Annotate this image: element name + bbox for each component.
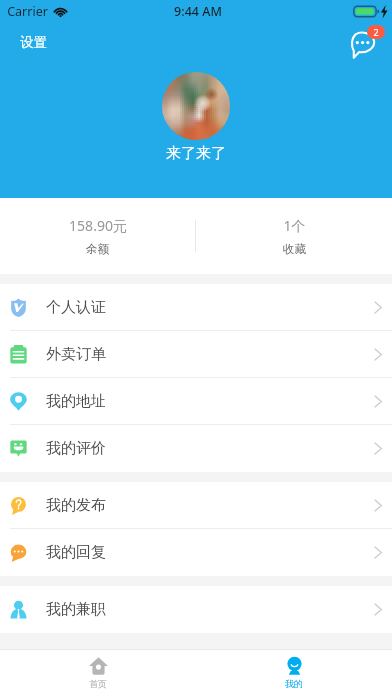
staticText: 来了来了 xyxy=(166,144,226,163)
staticText: 我的发布 xyxy=(46,496,106,515)
button[interactable]: 我的地址 xyxy=(0,378,392,425)
staticText: Carrier xyxy=(7,3,48,20)
staticText: 外卖订单 xyxy=(46,345,106,364)
button[interactable] xyxy=(162,72,230,140)
button[interactable]: 个人认证 xyxy=(0,284,392,331)
button[interactable]: 外卖订单 xyxy=(0,331,392,378)
staticText: 我的评价 xyxy=(46,439,106,458)
staticText: 2 xyxy=(373,26,379,38)
button[interactable]: 我的 xyxy=(196,649,392,696)
staticText: 我的回复 xyxy=(46,543,106,562)
staticText: 首页 xyxy=(89,678,107,689)
button[interactable]: 我的发布 xyxy=(0,482,392,529)
staticText: 我的 xyxy=(285,678,303,689)
staticText: 158.90元 xyxy=(69,216,127,235)
staticText: 我的地址 xyxy=(46,392,106,411)
button[interactable]: 首页 xyxy=(0,649,196,696)
button[interactable]: 158.90元 xyxy=(0,198,195,274)
staticText: 收藏 xyxy=(283,242,306,256)
staticText: 9:44 AM xyxy=(174,3,222,20)
button[interactable]: 我的评价 xyxy=(0,425,392,472)
button[interactable]: 1个 xyxy=(196,198,392,274)
button[interactable]: 我的兼职 xyxy=(0,586,392,633)
staticText: 设置 xyxy=(20,34,47,51)
staticText: 余额 xyxy=(86,242,109,256)
button[interactable]: 我的回复 xyxy=(0,529,392,576)
staticText: 个人认证 xyxy=(46,298,106,317)
staticText: 1个 xyxy=(283,216,306,235)
button[interactable]: Messages xyxy=(347,24,385,62)
staticText: 我的兼职 xyxy=(46,600,106,619)
button[interactable]: 设置 xyxy=(14,29,53,56)
